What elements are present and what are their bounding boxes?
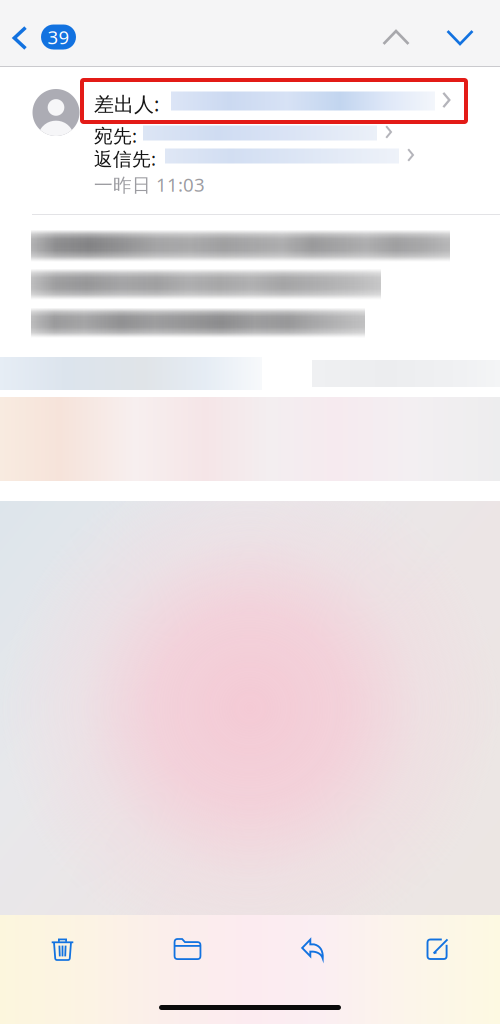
button[interactable]: Back, 39 unread (0, 0, 85, 67)
button[interactable]: 差出人: (0, 0, 384, 42)
staticText: 宛先: (94, 123, 137, 148)
staticText: 差出人: (94, 90, 159, 117)
button[interactable]: Compose (375, 918, 500, 980)
staticText: 39 (47, 25, 69, 49)
button[interactable]: Reply (250, 918, 375, 980)
button[interactable]: Move to folder (125, 918, 250, 980)
staticText: 一昨日 11:03 (94, 172, 205, 197)
button[interactable]: Previous message (0, 0, 60, 52)
staticText: 返信先: (94, 146, 156, 171)
button[interactable]: Delete (0, 918, 125, 980)
button[interactable]: Next message (0, 0, 60, 52)
